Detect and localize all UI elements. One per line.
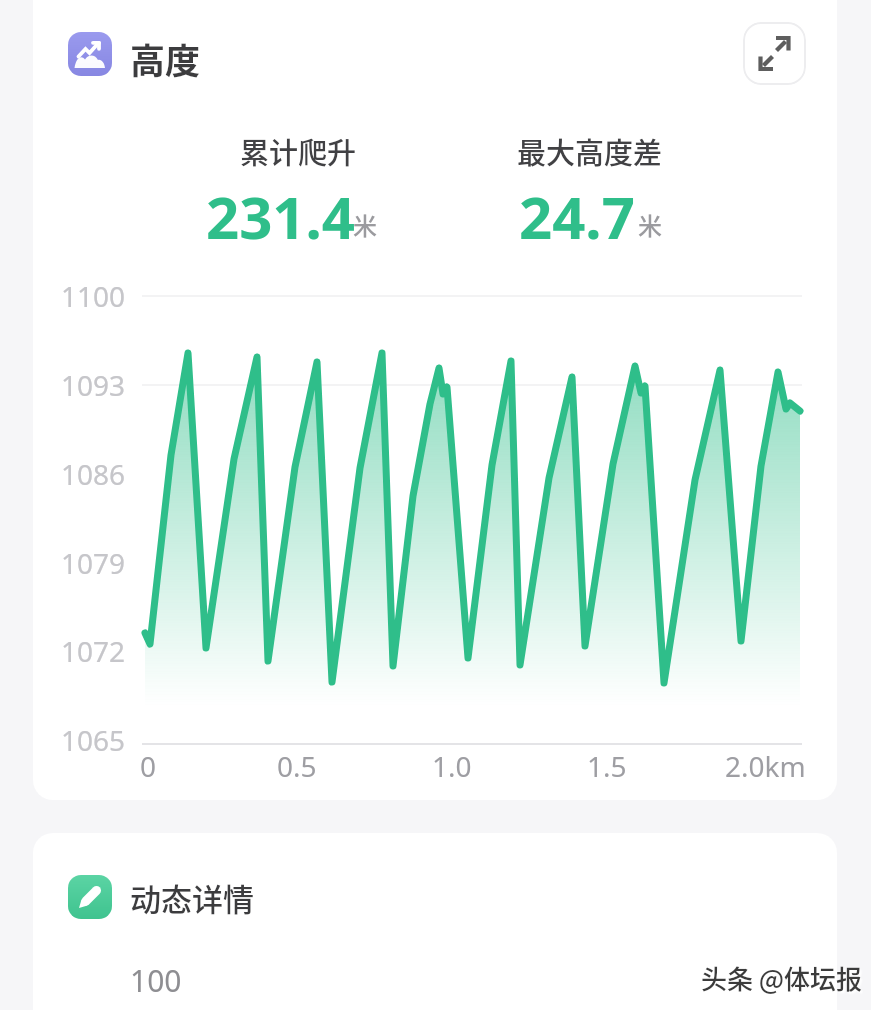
- staticText: 24.7: [519, 177, 635, 247]
- staticText: 0: [140, 747, 157, 785]
- staticText: 1100: [61, 277, 126, 315]
- staticText: 米: [638, 207, 662, 241]
- staticText: 2.0km: [725, 747, 806, 785]
- staticText: 头条 @体坛报: [701, 959, 863, 995]
- staticText: 1065: [61, 721, 126, 759]
- staticText: 231.4: [206, 177, 356, 247]
- staticText: 最大高度差: [517, 130, 663, 172]
- staticText: 1072: [61, 632, 126, 670]
- staticText: 米: [353, 207, 377, 241]
- staticText: 0.5: [277, 747, 317, 785]
- staticText: 1093: [61, 366, 126, 404]
- button[interactable]: [743, 22, 806, 85]
- staticText: 累计爬升: [240, 130, 357, 172]
- staticText: 高度: [130, 33, 201, 83]
- staticText: 动态详情: [130, 875, 254, 920]
- staticText: 1079: [61, 544, 126, 582]
- staticText: 1.0: [432, 747, 472, 785]
- staticText: 1086: [61, 455, 126, 493]
- staticText: 1.5: [587, 747, 627, 785]
- staticText: 100: [130, 960, 182, 1001]
